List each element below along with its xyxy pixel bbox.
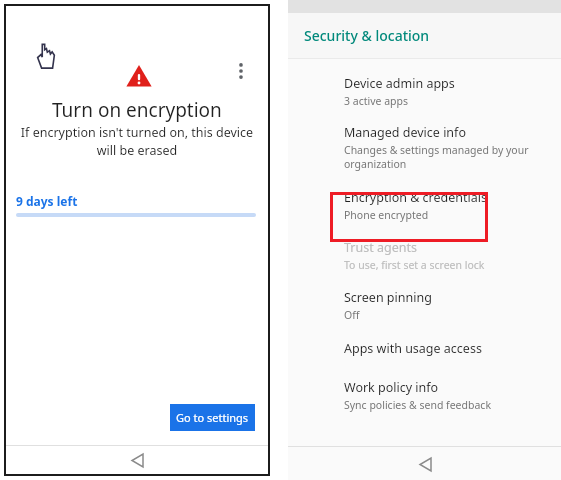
- button[interactable]: Apps with usage access: [344, 340, 547, 357]
- staticText: Go to settings: [176, 410, 249, 425]
- button[interactable]: Managed device info: [344, 124, 547, 171]
- staticText: Security & location: [304, 26, 430, 45]
- staticText: Turn on encryption: [52, 97, 222, 123]
- staticText: Sync policies & send feedback: [344, 398, 491, 412]
- staticText: 3 active apps: [344, 94, 408, 108]
- staticText: Screen pinning: [344, 289, 432, 306]
- button[interactable]: Device admin apps: [344, 75, 547, 108]
- staticText: Changes & settings managed by your organ…: [344, 143, 547, 171]
- other: Pointer: [35, 42, 57, 72]
- staticText: Off: [344, 308, 360, 322]
- staticText: Trust agents: [344, 239, 417, 256]
- button[interactable]: Trust agents: [344, 239, 547, 272]
- button[interactable]: Back: [413, 452, 437, 476]
- staticText: Encryption & credentials: [344, 189, 487, 206]
- staticText: Device admin apps: [344, 75, 455, 92]
- staticText: Phone encrypted: [344, 208, 429, 222]
- button[interactable]: Work policy info: [344, 379, 547, 412]
- button[interactable]: Encryption & credentials: [344, 189, 547, 222]
- staticText: If encryption isn't turned on, this devi…: [16, 124, 258, 159]
- staticText: Work policy info: [344, 379, 439, 396]
- staticText: Apps with usage access: [344, 340, 482, 357]
- button[interactable]: More options: [230, 60, 252, 82]
- button[interactable]: Go to settings: [170, 404, 255, 431]
- button[interactable]: Back: [125, 448, 149, 472]
- staticText: Managed device info: [344, 124, 466, 141]
- button[interactable]: Screen pinning: [344, 289, 547, 322]
- staticText: 9 days left: [16, 193, 78, 209]
- staticText: To use, first set a screen lock: [344, 258, 485, 272]
